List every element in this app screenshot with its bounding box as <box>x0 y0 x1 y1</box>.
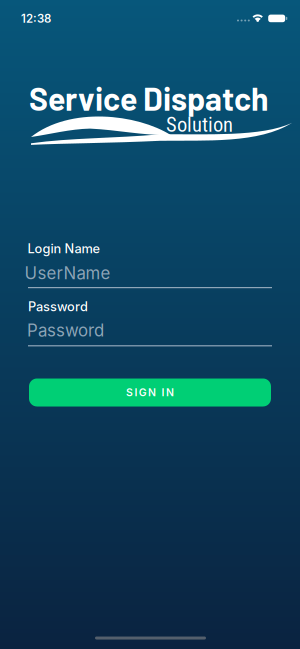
staticText: UserName <box>24 263 110 283</box>
staticText: Solution <box>166 113 233 137</box>
staticText: SIGN IN <box>126 386 174 399</box>
button[interactable]: SIGN IN <box>29 378 271 406</box>
staticText: Login Name <box>27 241 100 256</box>
button[interactable]: UserName <box>28 258 272 289</box>
staticText: 12:38 <box>21 12 51 26</box>
staticText: Service Dispatch <box>29 79 269 117</box>
button[interactable]: Password <box>28 316 272 347</box>
staticText: Password <box>27 320 104 341</box>
staticText: Password <box>28 299 88 314</box>
